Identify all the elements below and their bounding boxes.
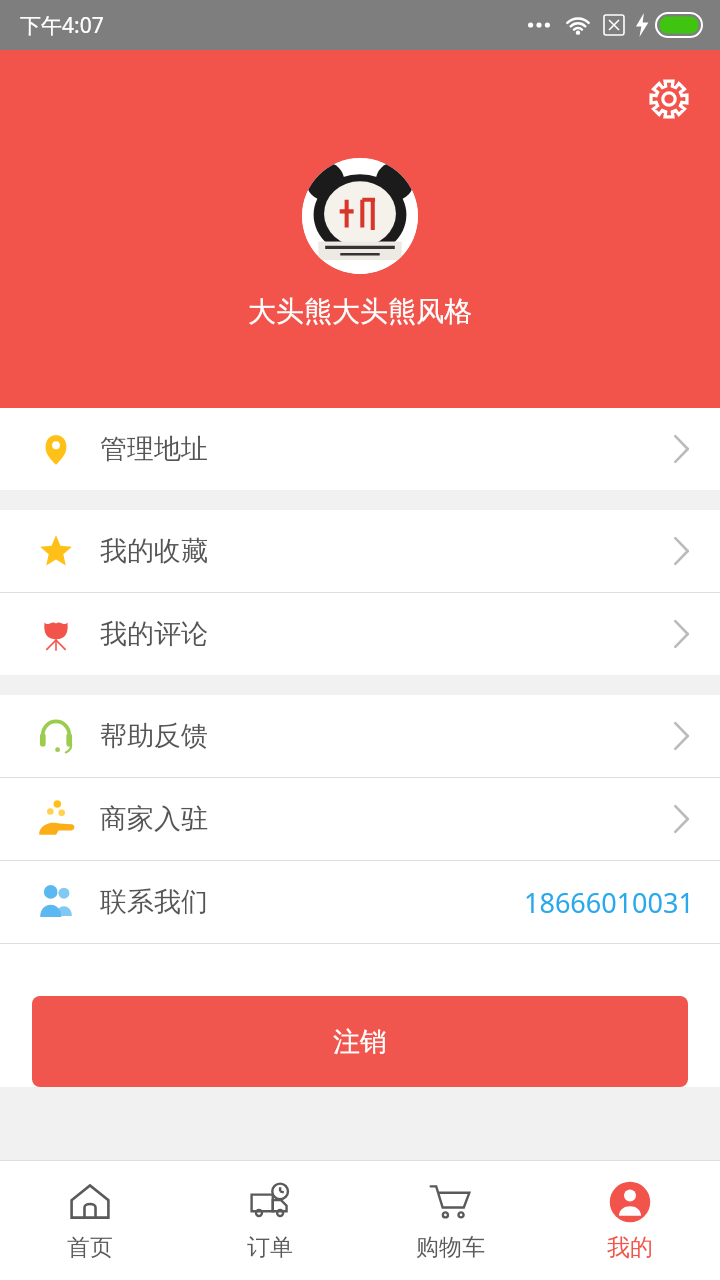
staticText: 注销	[333, 1025, 387, 1059]
staticText: 我的	[607, 1233, 653, 1262]
button[interactable]: Avatar	[302, 158, 418, 274]
button[interactable]: 我的收藏	[0, 510, 720, 592]
staticText: 18666010031	[524, 884, 694, 921]
staticText: 大头熊大头熊风格	[248, 294, 472, 329]
staticText: 我的收藏	[100, 534, 208, 568]
button[interactable]: 订单	[180, 1161, 360, 1280]
button[interactable]: 首页	[0, 1161, 180, 1280]
staticText: 管理地址	[100, 432, 208, 466]
button[interactable]: 帮助反馈	[0, 695, 720, 777]
staticText: 联系我们	[100, 885, 208, 919]
button[interactable]: 联系我们	[0, 861, 720, 943]
staticText: 我的评论	[100, 617, 208, 651]
button[interactable]: 商家入驻	[0, 778, 720, 860]
staticText: 首页	[67, 1233, 113, 1262]
staticText: 帮助反馈	[100, 719, 208, 753]
button[interactable]: Settings	[640, 70, 698, 128]
staticText: 商家入驻	[100, 802, 208, 836]
button[interactable]: 管理地址	[0, 408, 720, 490]
staticText: 购物车	[416, 1233, 485, 1262]
staticText: 订单	[247, 1233, 293, 1262]
button[interactable]: 购物车	[360, 1161, 540, 1280]
button[interactable]: 注销	[32, 996, 688, 1087]
button[interactable]: 我的评论	[0, 593, 720, 675]
button[interactable]: 我的	[540, 1161, 720, 1280]
staticText: 下午4:07	[20, 11, 104, 40]
